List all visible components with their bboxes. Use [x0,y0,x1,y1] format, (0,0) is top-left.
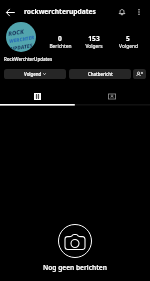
button[interactable]: Notifications [114,4,129,19]
button[interactable]: More options [132,5,145,18]
staticText: 5 [126,34,130,43]
staticText: Volgend [24,71,42,77]
staticText: 0 [58,34,62,43]
button[interactable]: 153 [76,34,112,50]
staticText: Volgers [85,43,103,50]
button[interactable]: Posts grid [24,89,50,104]
staticText: ROCK [7,28,24,38]
staticText: Volgend [119,43,138,50]
button[interactable]: Discover people [133,69,146,79]
button[interactable]: Chatbericht [69,69,131,79]
button[interactable]: Tagged posts [99,89,125,104]
staticText: RockWerchterUpdates [4,56,53,62]
staticText: UPDATES [10,41,34,52]
staticText: Nog geen berichten [43,263,107,272]
staticText: rockwerchterupdates [24,7,96,16]
staticText: Berichten [49,43,72,50]
staticText: 153 [88,34,100,43]
staticText: Chatbericht [88,71,113,77]
button[interactable]: Back [2,4,18,20]
button[interactable]: Profile picture [6,22,36,52]
button[interactable]: 5 [110,34,146,50]
button[interactable]: 0 [42,34,78,50]
button[interactable]: Volgend [4,69,66,79]
staticText: WERCHTER [9,34,35,45]
